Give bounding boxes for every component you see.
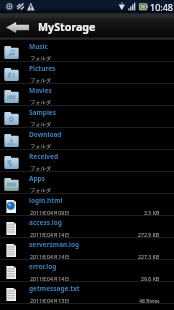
- staticText: フォルダ: [30, 143, 52, 150]
- button[interactable]: login.html: [0, 194, 174, 216]
- staticText: フォルダ: [30, 77, 52, 84]
- staticText: 10:48: [150, 1, 174, 13]
- button[interactable]: getmessage.txt: [0, 282, 174, 304]
- staticText: 48 Bytes: [139, 297, 160, 304]
- button[interactable]: Apps: [0, 172, 174, 194]
- staticText: Music: [29, 42, 48, 51]
- staticText: 3.5 KB: [144, 209, 160, 216]
- staticText: 227.3 KB: [138, 253, 160, 260]
- staticText: MyStorage: [38, 20, 96, 35]
- staticText: フォルダ: [30, 121, 52, 128]
- staticText: Samples: [29, 108, 57, 117]
- staticText: serversman.log: [29, 240, 80, 249]
- button[interactable]: access.log: [0, 216, 174, 238]
- staticText: Download: [29, 130, 62, 139]
- staticText: フォルダ: [30, 55, 52, 62]
- button[interactable]: Pictures: [0, 62, 174, 84]
- button[interactable]: serversman.log: [0, 238, 174, 260]
- staticText: Pictures: [29, 64, 56, 73]
- button[interactable]: Received: [0, 150, 174, 172]
- staticText: 2011年04月14日: [30, 231, 70, 238]
- staticText: getmessage.txt: [29, 284, 80, 293]
- button[interactable]: Back: [0, 13, 34, 40]
- staticText: Movies: [29, 86, 52, 95]
- button[interactable]: error.log: [0, 260, 174, 282]
- staticText: 2011年04月09日: [30, 209, 70, 216]
- staticText: フォルダ: [30, 165, 52, 172]
- button[interactable]: Download: [0, 128, 174, 150]
- staticText: 2011年04月14日: [30, 253, 70, 260]
- staticText: login.html: [29, 196, 63, 205]
- staticText: 272.9 KB: [138, 231, 160, 238]
- staticText: フォルダ: [30, 187, 52, 194]
- staticText: 2011年04月13日: [30, 297, 70, 304]
- staticText: Received: [29, 152, 59, 161]
- staticText: access.log: [29, 218, 62, 227]
- button[interactable]: Samples: [0, 106, 174, 128]
- button[interactable]: Back: [0, 13, 174, 40]
- staticText: error.log: [29, 262, 57, 271]
- button[interactable]: Movies: [0, 84, 174, 106]
- staticText: Apps: [29, 174, 45, 183]
- staticText: 2011年04月14日: [30, 275, 70, 282]
- button[interactable]: Music: [0, 40, 174, 62]
- staticText: 29.6 KB: [141, 275, 160, 282]
- staticText: フォルダ: [30, 99, 52, 106]
